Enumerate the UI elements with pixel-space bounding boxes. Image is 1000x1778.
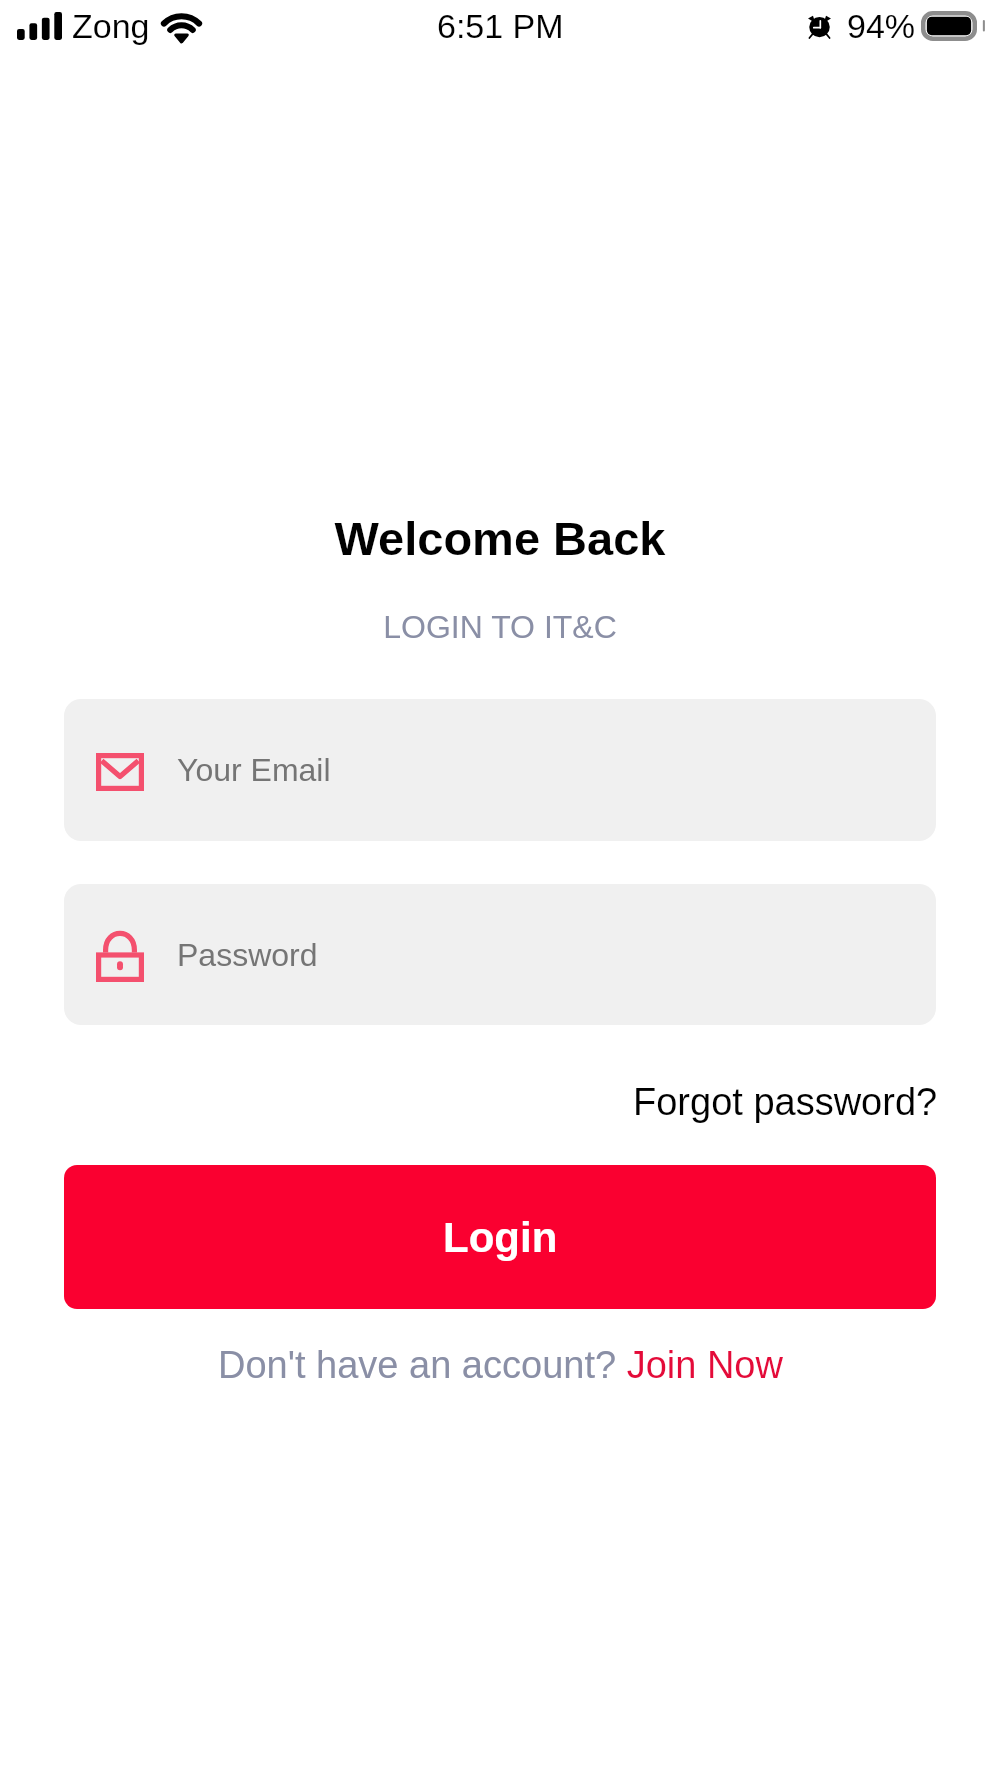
button[interactable]: Email <box>64 699 936 841</box>
staticText: Zong <box>72 7 150 45</box>
staticText: LOGIN TO IT&C <box>0 609 1000 645</box>
staticText: Welcome Back <box>0 512 1000 565</box>
button[interactable]: Forgot password? <box>629 1071 942 1133</box>
other: Battery <box>921 11 985 41</box>
button[interactable]: Password <box>64 884 936 1025</box>
other: Alarm <box>808 12 831 39</box>
other: Password <box>96 935 144 982</box>
other: Email <box>96 753 144 791</box>
staticText: Forgot password? <box>633 1081 938 1123</box>
button[interactable]: Login <box>64 1165 936 1309</box>
staticText: Your Email <box>177 752 331 788</box>
staticText: Don't have an account? Join Now <box>218 1344 783 1386</box>
staticText: 94% <box>847 7 916 45</box>
staticText: 6:51 PM <box>437 7 564 45</box>
staticText: Password <box>177 937 318 973</box>
button[interactable]: Don't have an account? Join Now <box>212 1334 789 1396</box>
staticText: Login <box>443 1214 558 1261</box>
